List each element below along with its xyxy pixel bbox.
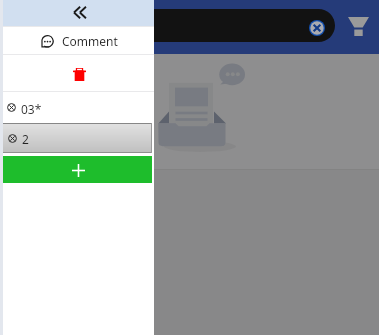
button[interactable]: Clear search — [0, 9, 335, 42]
button[interactable]: 03* — [0, 92, 154, 123]
staticText: 2 — [22, 131, 29, 147]
button[interactable]: 2 — [1, 123, 152, 153]
button[interactable]: Collapse panel — [0, 0, 154, 26]
button[interactable]: Filter — [344, 12, 372, 40]
button[interactable]: Add — [2, 156, 152, 183]
staticText: Comment — [62, 33, 118, 49]
staticText: 03* — [21, 101, 42, 117]
button[interactable]: Delete — [0, 55, 154, 91]
button[interactable]: Comment — [0, 27, 154, 54]
button[interactable]: Clear search — [309, 20, 325, 36]
